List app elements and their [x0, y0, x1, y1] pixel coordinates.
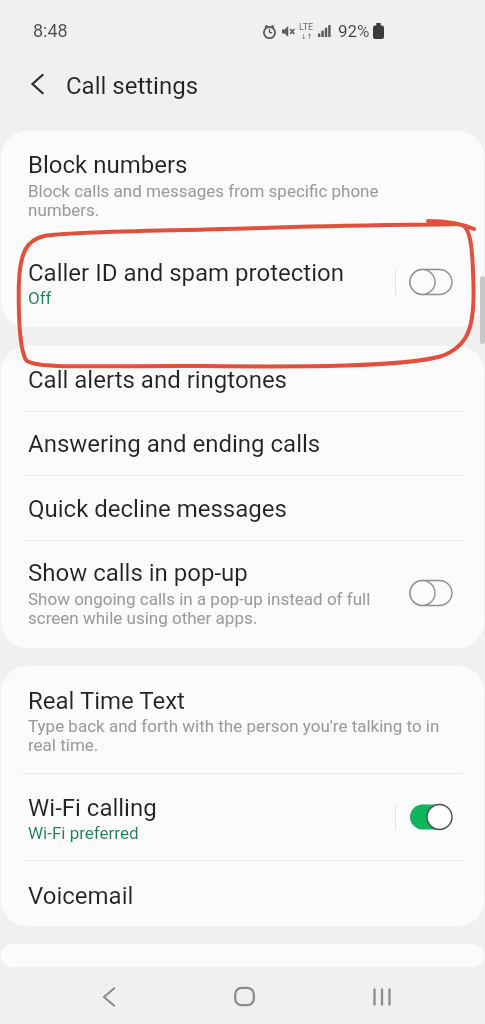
staticText: ↓↑	[301, 33, 313, 41]
button[interactable]: Wi-Fi calling	[1, 773, 484, 860]
staticText: Type back and forth with the person you'…	[28, 716, 440, 756]
button[interactable]: Quick decline messages	[1, 476, 484, 540]
button[interactable]: Answering and ending calls	[1, 411, 484, 476]
staticText: 8:48	[33, 20, 68, 41]
button[interactable]: Caller ID and spam protection switch, of…	[401, 258, 461, 306]
staticText: Answering and ending calls	[28, 430, 321, 458]
staticText: Off	[28, 288, 52, 308]
staticText: Show ongoing calls in a pop-up instead o…	[28, 589, 371, 629]
staticText: Quick decline messages	[28, 495, 287, 523]
staticText: 92%	[338, 21, 370, 41]
button[interactable]: Call alerts and ringtones	[1, 346, 484, 411]
staticText: Call alerts and ringtones	[28, 366, 287, 394]
button[interactable]: Wi-Fi calling switch, on	[401, 793, 461, 841]
staticText: LTE	[299, 22, 314, 33]
staticText: Block calls and messages from specific p…	[28, 181, 379, 221]
staticText: Voicemail	[28, 882, 134, 910]
staticText: Real Time Text	[28, 687, 185, 715]
button[interactable]: Recent apps	[353, 968, 410, 1024]
button[interactable]: Show calls in pop-up	[1, 540, 484, 648]
staticText: Call settings	[66, 72, 199, 100]
button[interactable]: Voicemail	[1, 860, 484, 926]
button[interactable]: Block numbers	[1, 131, 484, 247]
button[interactable]: Back	[80, 968, 137, 1024]
button[interactable]: Show calls in pop-up switch, off	[401, 569, 461, 617]
button[interactable]: Caller ID and spam protection	[1, 247, 484, 327]
staticText: Block numbers	[28, 151, 188, 179]
staticText: Show calls in pop-up	[28, 559, 248, 587]
button[interactable]: Home	[216, 968, 273, 1024]
button[interactable]: Back	[17, 64, 57, 104]
staticText: Wi-Fi preferred	[28, 823, 139, 843]
staticText: Caller ID and spam protection	[28, 259, 344, 287]
button[interactable]: Real Time Text	[1, 666, 484, 773]
staticText: Wi-Fi calling	[28, 794, 157, 822]
